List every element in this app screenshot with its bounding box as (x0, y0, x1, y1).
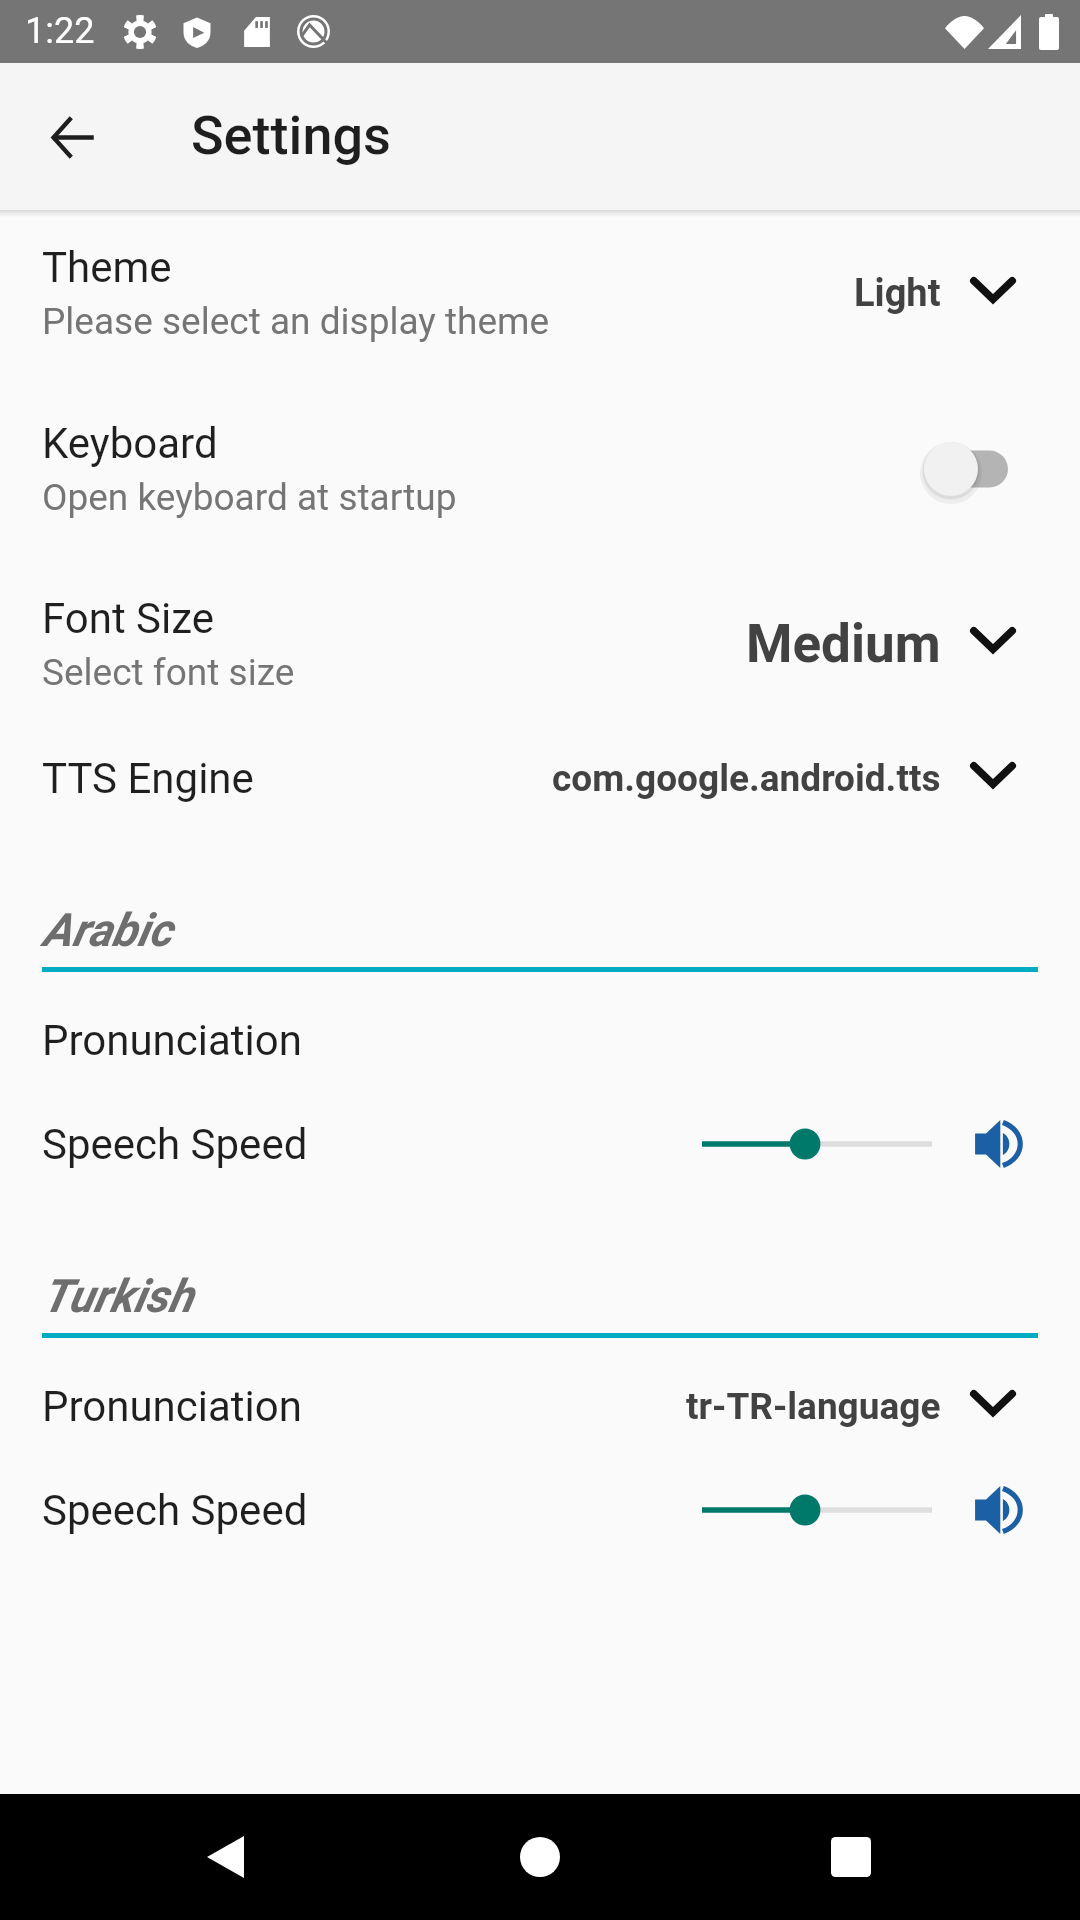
staticText: Pronunciation (42, 1382, 302, 1431)
button[interactable]: Speech Speed (0, 1484, 1080, 1536)
button[interactable]: Pronunciation (0, 1014, 1080, 1066)
staticText: Theme (42, 243, 172, 292)
button[interactable]: Keyboard (0, 413, 1080, 525)
button[interactable]: Speech Speed (0, 1118, 1080, 1170)
staticText: Turkish (42, 1269, 194, 1323)
staticText: com.google.android.tts (552, 757, 941, 800)
button[interactable]: Play sample (973, 1118, 1025, 1170)
staticText: Open keyboard at startup (42, 476, 457, 519)
button[interactable]: tr-TR-language (686, 1385, 1016, 1428)
button[interactable]: Light (854, 271, 1016, 316)
button[interactable]: Recents (796, 1802, 906, 1912)
staticText: Settings (191, 104, 391, 167)
button[interactable]: Pronunciation (0, 1380, 1080, 1432)
staticText: Font Size (42, 594, 215, 643)
staticText: Keyboard (42, 419, 218, 468)
staticText: Select font size (42, 651, 295, 694)
button[interactable]: Font Size (0, 588, 1080, 700)
staticText: Light (854, 271, 941, 316)
button[interactable]: TTS Engine (0, 752, 1080, 804)
staticText: Please select an display theme (42, 300, 550, 343)
button[interactable]: Back (28, 92, 118, 182)
staticText: Pronunciation (42, 1016, 302, 1065)
button[interactable]: Speech speed (702, 1484, 932, 1536)
button[interactable]: Open keyboard at startup (916, 433, 1008, 505)
button[interactable]: Theme (0, 237, 1080, 349)
staticText: tr-TR-language (686, 1385, 941, 1428)
staticText: TTS Engine (42, 754, 254, 803)
staticText: 1:22 (25, 10, 95, 52)
staticText: Speech Speed (42, 1486, 308, 1535)
button[interactable]: com.google.android.tts (552, 757, 1016, 800)
button[interactable]: Speech speed (702, 1118, 932, 1170)
staticText: Speech Speed (42, 1120, 308, 1169)
staticText: Medium (746, 613, 941, 675)
staticText: Arabic (42, 903, 172, 957)
button[interactable]: Home (485, 1802, 595, 1912)
button[interactable]: Play sample (973, 1484, 1025, 1536)
button[interactable]: Medium (746, 613, 1016, 675)
button[interactable]: Back (170, 1802, 280, 1912)
